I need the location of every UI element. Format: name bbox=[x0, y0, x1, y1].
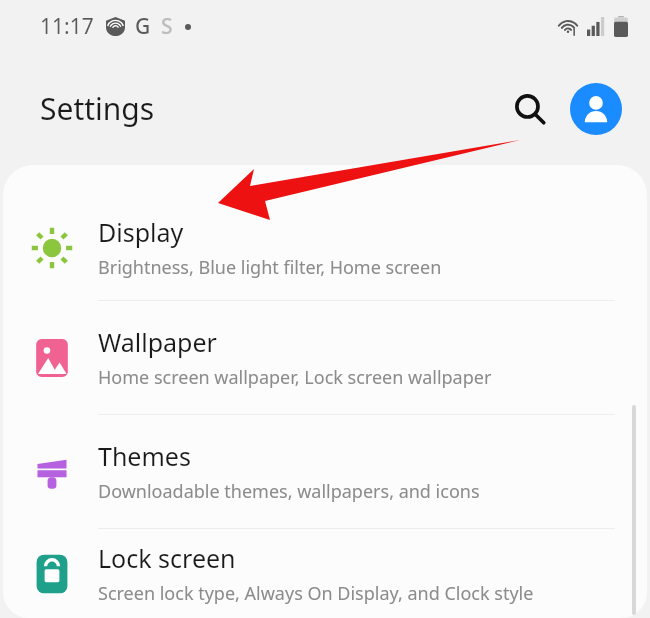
staticText: Home screen wallpaper, Lock screen wallp… bbox=[98, 365, 492, 390]
staticText: S bbox=[161, 12, 173, 41]
button[interactable]: Display bbox=[3, 165, 647, 300]
staticText: Brightness, Blue light filter, Home scre… bbox=[98, 255, 442, 280]
button[interactable]: Account bbox=[570, 83, 622, 135]
staticText: Themes bbox=[98, 439, 191, 473]
button[interactable]: Themes bbox=[3, 415, 647, 528]
staticText: Lock screen bbox=[98, 541, 236, 575]
button[interactable]: Wallpaper bbox=[3, 301, 647, 414]
staticText: Settings bbox=[40, 88, 155, 129]
staticText: G bbox=[135, 12, 151, 41]
staticText: Wallpaper bbox=[98, 325, 217, 359]
staticText: 11:17 bbox=[40, 12, 94, 41]
staticText: Screen lock type, Always On Display, and… bbox=[98, 581, 534, 606]
staticText: Downloadable themes, wallpapers, and ico… bbox=[98, 479, 480, 504]
button[interactable]: Search bbox=[504, 83, 556, 135]
staticText: Display bbox=[98, 215, 184, 249]
button[interactable]: Lock screen bbox=[3, 529, 647, 618]
